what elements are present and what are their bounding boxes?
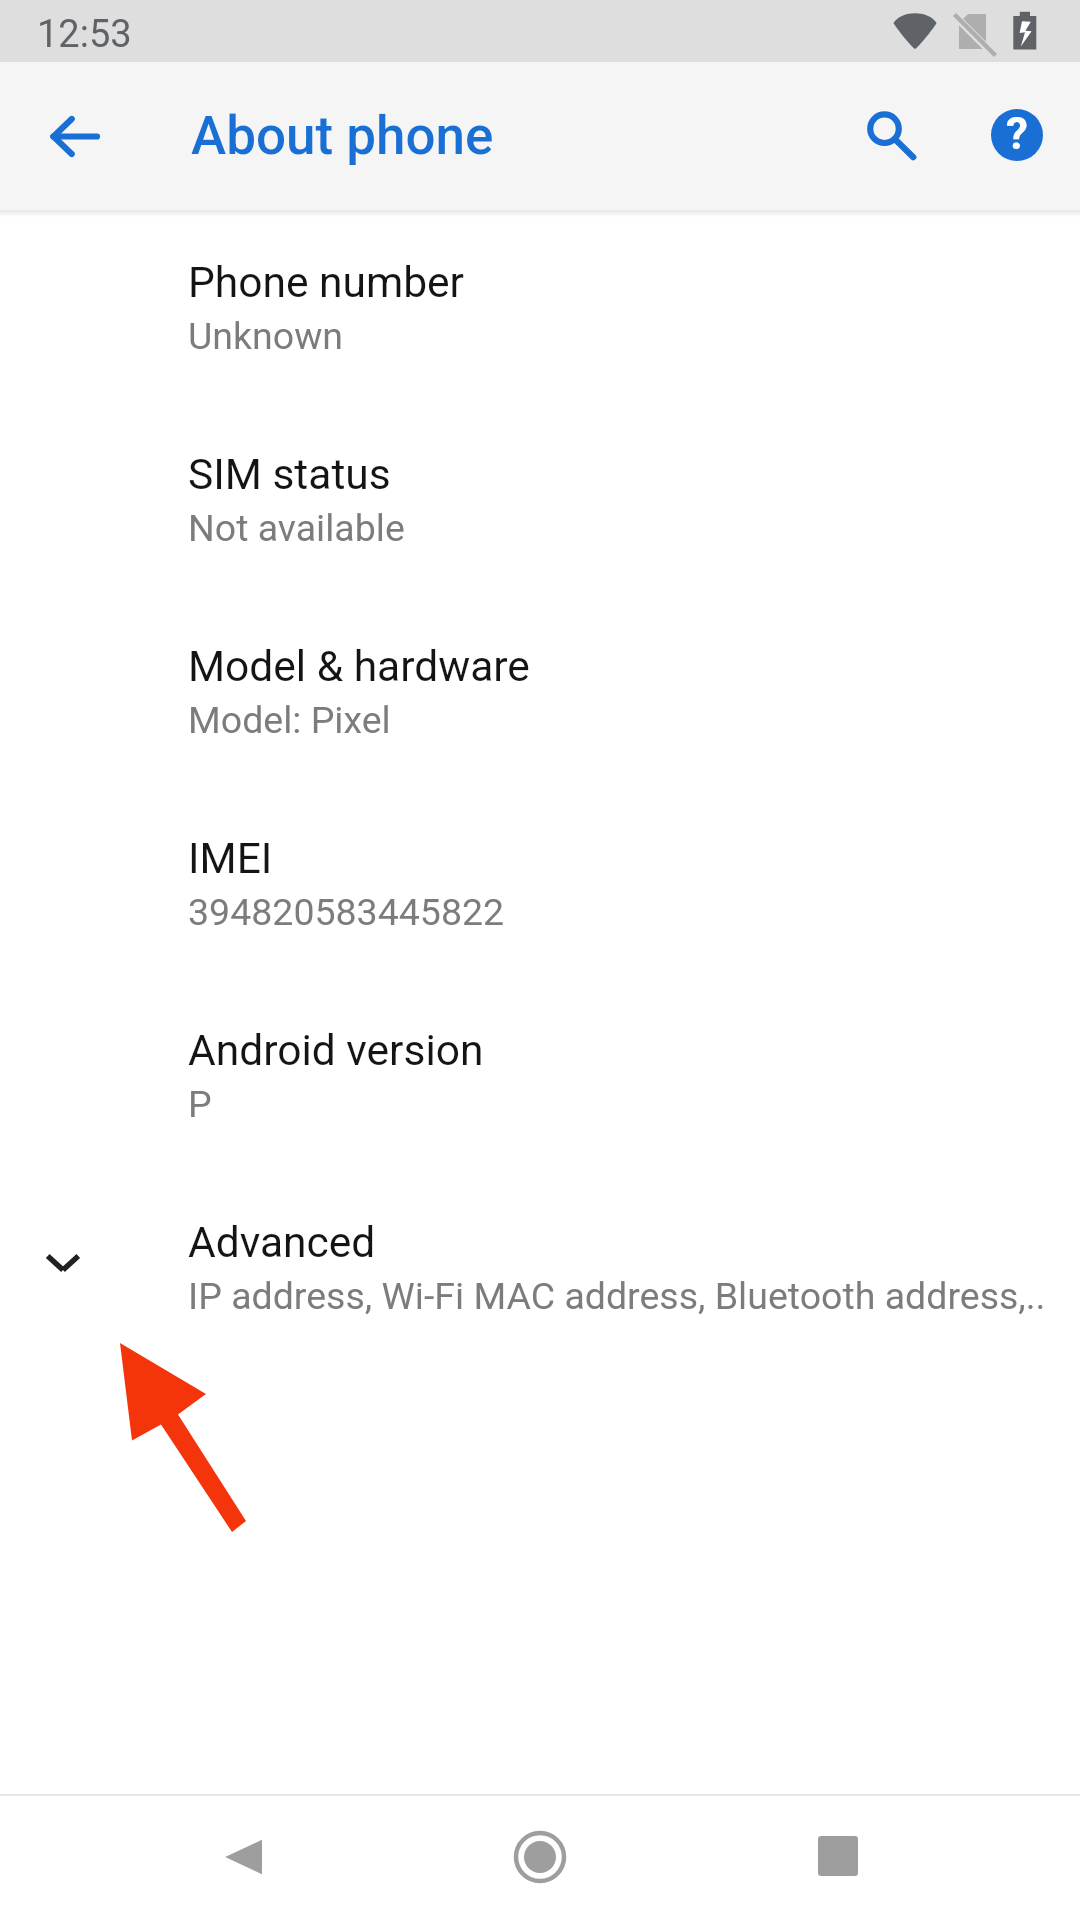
button[interactable]: SIM status — [0, 410, 1080, 602]
staticText: SIM status — [188, 450, 391, 500]
staticText: Unknown — [188, 314, 1080, 358]
staticText: Model: Pixel — [188, 698, 1080, 742]
staticText: ? — [1006, 109, 1028, 160]
staticText: 12:53 — [37, 12, 132, 57]
staticText: Phone number — [188, 258, 464, 308]
button[interactable]: Search settings — [819, 62, 949, 210]
button[interactable]: Model & hardware — [0, 602, 1080, 794]
button[interactable]: Android version — [0, 986, 1080, 1178]
button[interactable]: Recent apps — [780, 1794, 900, 1920]
button[interactable]: Home — [480, 1794, 600, 1920]
staticText: 394820583445822 — [188, 890, 1080, 934]
staticText: IP address, Wi-Fi MAC address, Bluetooth… — [188, 1274, 1080, 1318]
staticText: About phone — [191, 105, 494, 167]
button[interactable]: Help and feedback — [952, 62, 1080, 210]
button[interactable]: Advanced — [0, 1178, 1080, 1370]
staticText: Not available — [188, 506, 1080, 550]
button[interactable]: Navigate up — [7, 62, 144, 210]
button[interactable]: Phone number — [0, 218, 1080, 410]
staticText: Model & hardware — [188, 642, 530, 692]
staticText: Advanced — [188, 1218, 376, 1268]
button[interactable]: IMEI — [0, 794, 1080, 986]
staticText: IMEI — [188, 834, 273, 884]
button[interactable]: Back — [180, 1794, 300, 1920]
staticText: Android version — [188, 1026, 484, 1076]
staticText: P — [188, 1082, 1080, 1126]
